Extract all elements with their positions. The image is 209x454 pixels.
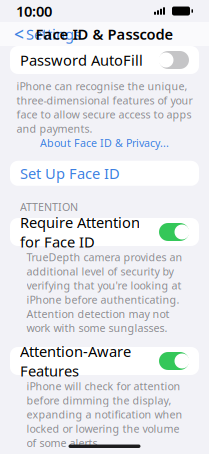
staticText: < [14, 22, 24, 45]
staticText: Face ID & Passcode [35, 24, 173, 44]
staticText: Set Up Face ID [20, 164, 120, 183]
staticText: 10:00 [16, 1, 52, 21]
staticText: About Face ID & Privacy... [40, 136, 169, 150]
button[interactable]: Set Up Face ID [10, 161, 199, 186]
button[interactable]: < [8, 22, 87, 46]
staticText: Settings [26, 24, 81, 44]
staticText: ATTENTION [20, 200, 78, 214]
button[interactable]: Password AutoFill [10, 46, 199, 74]
staticText: Require Attention for Face ID [20, 212, 140, 251]
staticText: Attention-Aware Features [20, 341, 131, 380]
staticText: TrueDepth camera provides an additional … [26, 250, 182, 335]
staticText: iPhone can recognise the unique, three-d… [16, 79, 192, 136]
button[interactable]: Require Attention for Face ID [10, 218, 199, 246]
button[interactable]: Attention-Aware Features [10, 347, 199, 375]
staticText: Password AutoFill [20, 50, 143, 70]
staticText: iPhone will check for attention before d… [26, 379, 182, 450]
button[interactable]: About Face ID & Privacy... [40, 136, 169, 150]
